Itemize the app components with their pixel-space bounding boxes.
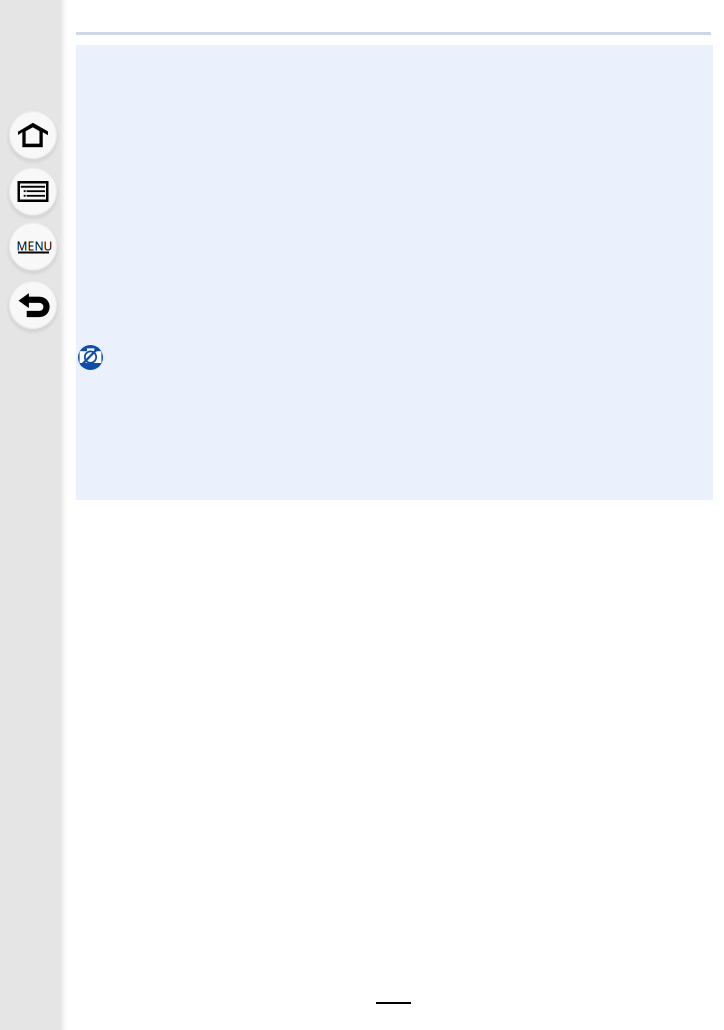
button[interactable]: Menu bbox=[9, 222, 57, 270]
button[interactable]: Home bbox=[9, 111, 57, 159]
button[interactable]: Back bbox=[9, 281, 57, 329]
staticText: MENU bbox=[16, 238, 52, 254]
button[interactable]: Contents bbox=[9, 167, 57, 215]
